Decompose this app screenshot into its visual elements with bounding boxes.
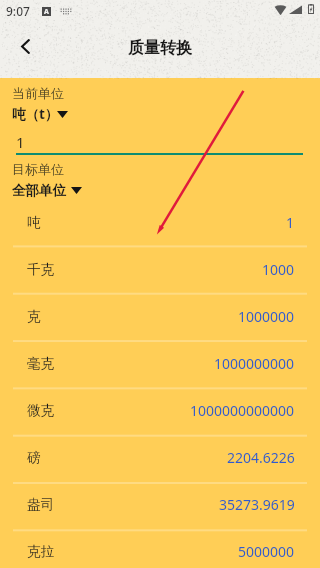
button[interactable]: 克拉 <box>0 528 320 568</box>
staticText: 当前单位 <box>12 85 64 101</box>
button[interactable]: 盎司 <box>0 481 320 528</box>
staticText: 磅 <box>27 449 41 466</box>
button[interactable]: Back <box>7 28 43 64</box>
staticText: 克 <box>27 308 41 325</box>
staticText: 千克 <box>27 261 54 278</box>
button[interactable]: 毫克 <box>0 340 320 387</box>
staticText: 1000000 <box>238 307 295 326</box>
staticText: 毫克 <box>27 355 54 372</box>
staticText: 目标单位 <box>12 161 64 177</box>
staticText: 吨（t） <box>12 105 59 123</box>
button[interactable]: 微克 <box>0 387 320 434</box>
staticText: 吨 <box>27 214 41 231</box>
button[interactable]: 吨 <box>0 199 320 246</box>
staticText: 质量转换 <box>128 38 192 58</box>
staticText: 2204.6226 <box>227 448 295 467</box>
staticText: 1000 <box>262 260 295 279</box>
staticText: 1 <box>16 132 25 152</box>
button[interactable]: 全部单位 <box>12 182 82 199</box>
staticText: 克拉 <box>27 543 54 560</box>
staticText: A <box>44 7 49 16</box>
staticText: 9:07 <box>6 3 30 19</box>
staticText: 5000000 <box>238 542 295 561</box>
staticText: 1 <box>286 213 295 232</box>
button[interactable]: 磅 <box>0 434 320 481</box>
button[interactable]: 吨（t） <box>12 105 70 123</box>
button[interactable]: 千克 <box>0 246 320 293</box>
staticText: 35273.9619 <box>219 495 295 514</box>
staticText: 1000000000000 <box>190 401 295 420</box>
staticText: 微克 <box>27 402 54 419</box>
staticText: 全部单位 <box>12 182 66 199</box>
staticText: 盎司 <box>27 496 54 513</box>
button[interactable]: 克 <box>0 293 320 340</box>
staticText: 1000000000 <box>214 354 295 373</box>
